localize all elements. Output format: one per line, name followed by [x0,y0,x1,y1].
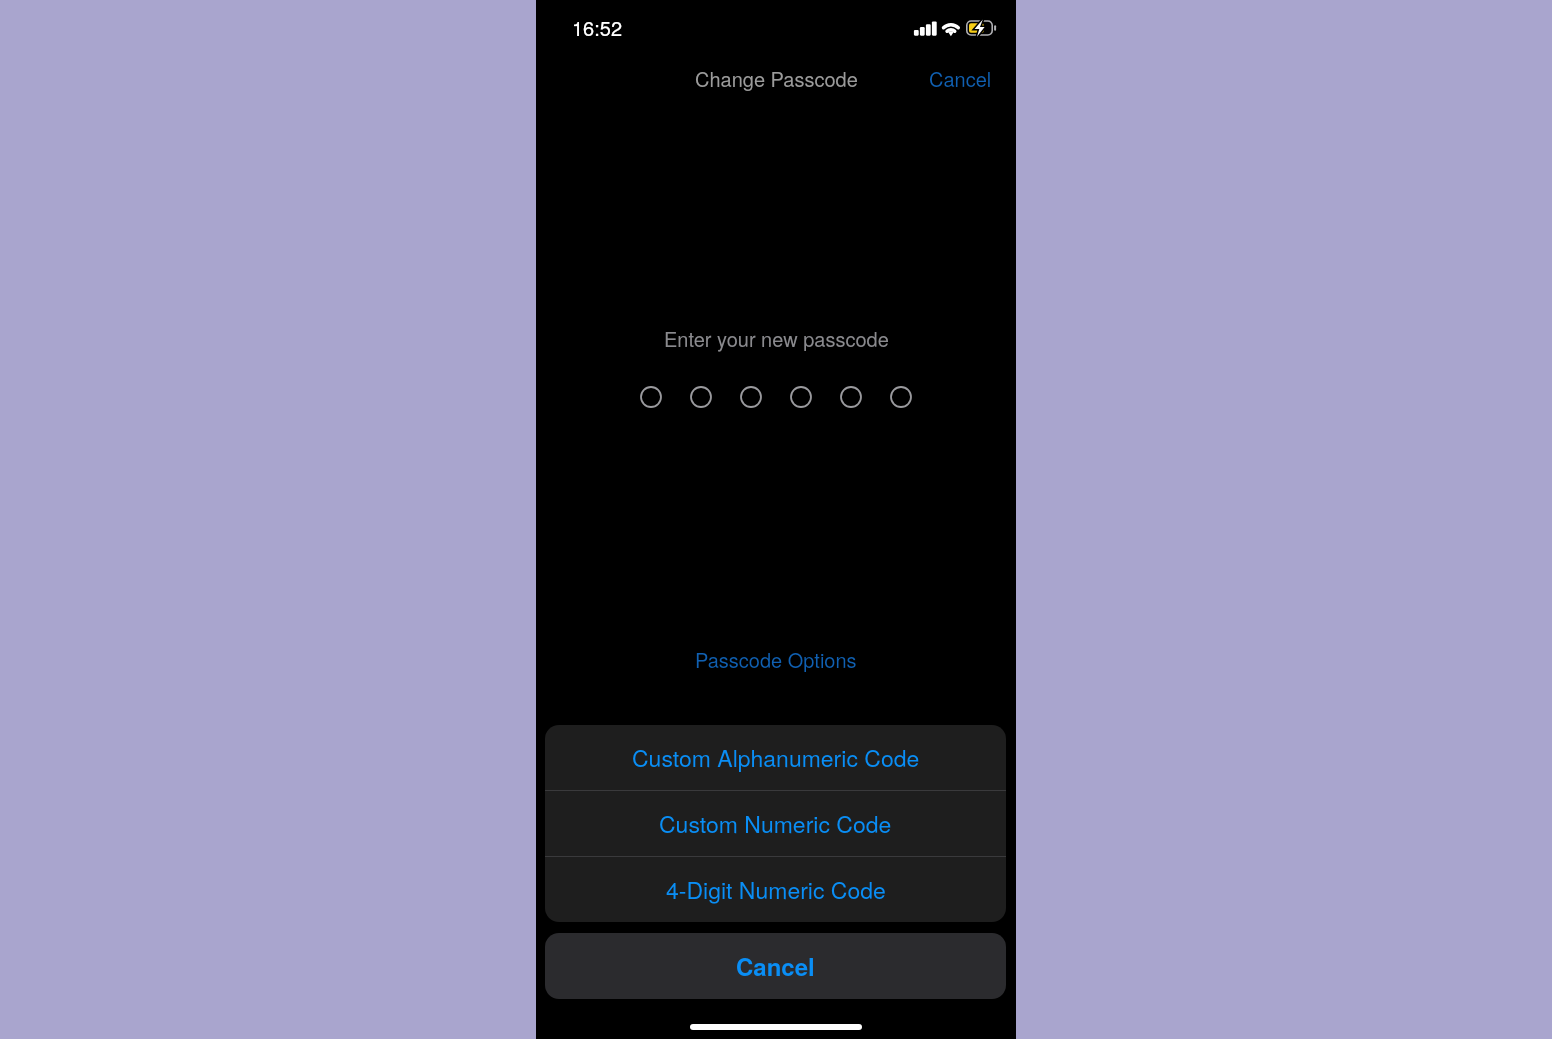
button[interactable]: Passcode Options [675,637,877,682]
button[interactable]: Cancel [545,933,1006,999]
button[interactable]: Custom Alphanumeric Code [545,725,1006,790]
staticText: Custom Numeric Code [659,807,892,840]
other: Cellular signal, Wi-Fi, battery charging [536,0,1016,54]
staticText: 4-Digit Numeric Code [666,873,886,906]
button[interactable]: 4-Digit Numeric Code [545,857,1006,922]
staticText: Cancel [929,64,992,93]
staticText: Enter your new passcode [664,324,889,353]
staticText: 16:52 [572,13,623,42]
button[interactable]: Custom Numeric Code [545,791,1006,856]
staticText: Custom Alphanumeric Code [632,741,920,774]
staticText: Passcode Options [695,645,857,674]
staticText: Cancel [736,949,815,983]
button[interactable]: Cancel [905,54,1016,103]
staticText: Change Passcode [695,64,858,93]
